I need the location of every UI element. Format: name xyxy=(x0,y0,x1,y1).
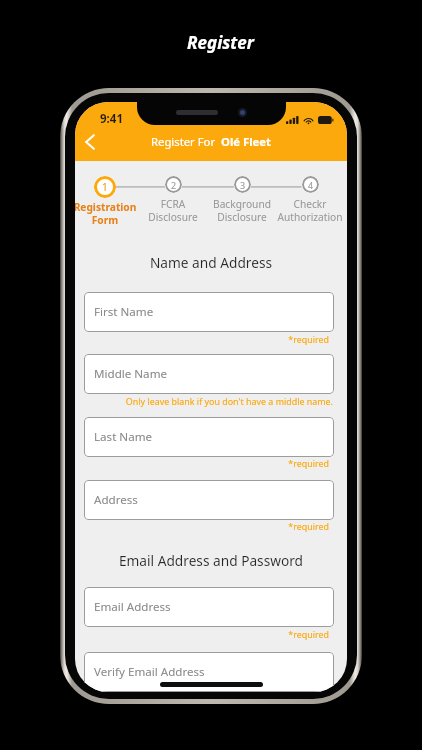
button[interactable]: Address xyxy=(84,480,334,520)
button[interactable]: 1 xyxy=(75,176,145,227)
staticText: Last Name xyxy=(94,429,153,445)
staticText: *required xyxy=(75,457,329,469)
button[interactable]: Verify Email Address xyxy=(84,652,334,692)
staticText: *required xyxy=(75,520,329,532)
staticText: Middle Name xyxy=(94,366,168,382)
staticText: *required xyxy=(75,628,329,640)
staticText: First Name xyxy=(94,304,154,320)
button[interactable]: Email Address xyxy=(84,587,334,627)
staticText: Checkr Authorization xyxy=(270,197,347,224)
staticText: Register For xyxy=(151,134,216,149)
staticText: Verify Email Address xyxy=(94,664,205,680)
staticText: 9:41 xyxy=(100,111,123,127)
staticText: Email Address xyxy=(94,599,171,615)
staticText: Only leave blank if you don't have a mid… xyxy=(75,395,333,407)
staticText: Olé Fleet xyxy=(221,134,271,149)
button[interactable]: Middle Name xyxy=(84,354,334,394)
staticText: Email Address and Password xyxy=(75,551,347,570)
button[interactable]: Last Name xyxy=(84,417,334,457)
staticText: 4 xyxy=(308,179,314,191)
staticText: 1 xyxy=(102,180,108,194)
button[interactable]: Back xyxy=(76,128,104,156)
staticText: *required xyxy=(75,333,329,345)
button[interactable]: 4 xyxy=(270,176,347,224)
staticText: Registration Form xyxy=(75,200,145,227)
button[interactable]: First Name xyxy=(84,292,334,332)
staticText: 3 xyxy=(240,179,246,191)
staticText: Register xyxy=(187,31,254,54)
staticText: 2 xyxy=(171,179,177,191)
button[interactable]: 2 xyxy=(133,176,213,224)
staticText: Background Disclosure xyxy=(202,197,282,224)
button[interactable]: 3 xyxy=(202,176,282,224)
staticText: Name and Address xyxy=(75,253,347,272)
staticText: FCRA Disclosure xyxy=(133,197,213,224)
staticText: Address xyxy=(94,492,138,508)
